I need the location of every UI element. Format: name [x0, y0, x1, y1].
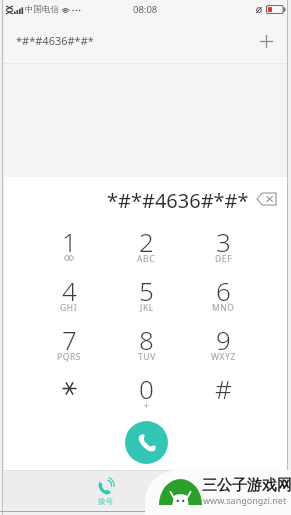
button[interactable]: 7 [30, 315, 108, 364]
button[interactable]: 5 [108, 266, 185, 315]
staticText: 2 [139, 224, 154, 259]
staticText: www.sangongzi.net [203, 494, 287, 506]
button[interactable]: 8 [108, 315, 185, 364]
button[interactable]: Backspace [253, 186, 279, 212]
button[interactable]: Call [125, 421, 168, 464]
staticText: 1 [62, 224, 77, 259]
staticText: MNO [212, 302, 235, 314]
button[interactable]: 0 [108, 364, 185, 413]
button[interactable] [215, 471, 288, 508]
staticText: 4 [62, 273, 77, 308]
button[interactable]: 6 [185, 266, 262, 315]
staticText: 7 [62, 322, 77, 357]
staticText: 8 [139, 322, 154, 357]
staticText: *#*#4636#*#* [107, 187, 249, 214]
button[interactable] [30, 364, 108, 413]
staticText: 3 [216, 224, 231, 259]
button[interactable] [142, 471, 215, 508]
button[interactable]: 9 [185, 315, 262, 364]
staticText: # [215, 371, 232, 406]
button[interactable]: 3 [185, 217, 262, 266]
staticText: 中国电信 [25, 4, 59, 15]
button[interactable]: # [185, 364, 262, 413]
staticText: DEF [215, 253, 233, 265]
button[interactable]: 1 [30, 217, 108, 266]
staticText: PQRS [57, 351, 82, 363]
staticText: TUV [138, 351, 156, 363]
staticText: 拨号 [98, 497, 113, 506]
staticText: + [144, 400, 150, 412]
staticText: ABC [137, 253, 156, 265]
staticText: 08:08 [133, 3, 158, 16]
staticText: *#*#4636#*#* [16, 33, 94, 48]
button[interactable]: Add [252, 27, 280, 55]
button[interactable]: 2 [108, 217, 185, 266]
staticText: 0 [139, 371, 154, 406]
staticText: 5 [139, 273, 154, 308]
button[interactable]: 4 [30, 266, 108, 315]
staticText: GHI [60, 302, 78, 314]
staticText: WXYZ [211, 351, 236, 363]
button[interactable]: 拨号 [68, 471, 142, 508]
staticText: 三公子游戏网 [202, 476, 291, 495]
staticText: JKL [140, 302, 154, 314]
staticText: 9 [216, 322, 231, 357]
staticText: 6 [216, 273, 231, 308]
